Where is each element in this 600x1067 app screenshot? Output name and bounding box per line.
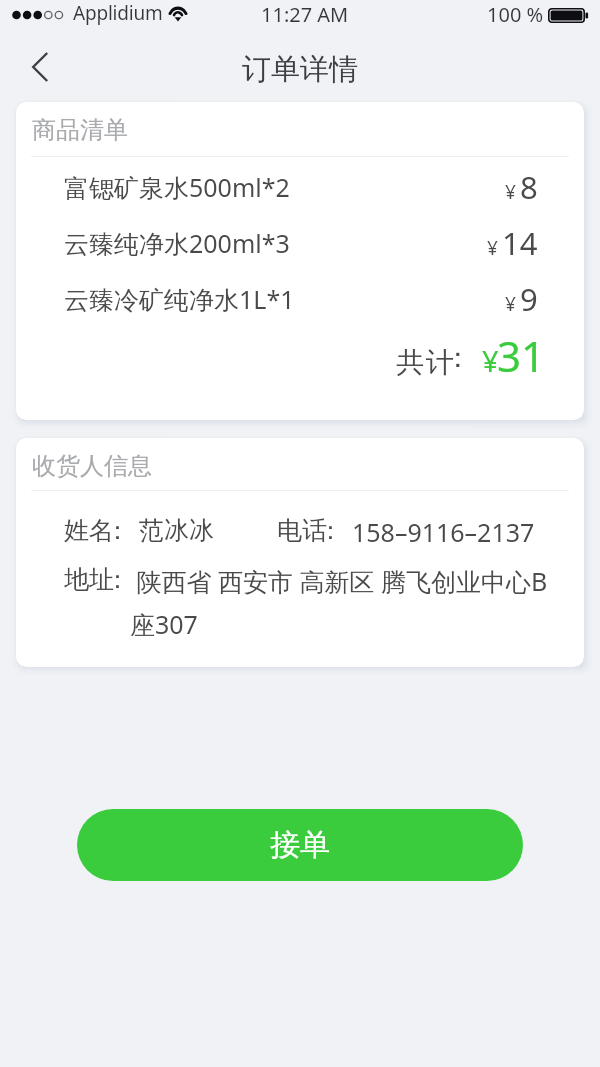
staticText: 接单: [270, 826, 330, 864]
staticText: Applidium: [73, 0, 163, 26]
staticText: 14: [502, 222, 538, 264]
staticText: 31: [497, 327, 546, 384]
staticText: ：: [318, 515, 343, 546]
staticText: ：: [105, 564, 130, 595]
staticText: ：: [105, 515, 130, 546]
button[interactable]: 富锶矿泉水500ml*2: [16, 159, 584, 215]
staticText: ¥: [505, 291, 516, 317]
staticText: ¥: [505, 179, 516, 205]
staticText: 云臻纯净水200ml*3: [64, 226, 290, 260]
staticText: ：: [444, 340, 471, 375]
staticText: 姓名: [64, 515, 114, 546]
button[interactable]: 云臻纯净水200ml*3: [16, 215, 584, 271]
staticText: 订单详情: [242, 51, 358, 88]
other: Battery full: [548, 8, 588, 23]
staticText: 电话: [277, 515, 327, 546]
staticText: 8: [520, 166, 538, 208]
staticText: 云臻冷矿纯净水1L*1: [64, 282, 295, 316]
button[interactable]: 云臻冷矿纯净水1L*1: [16, 271, 584, 327]
staticText: ¥: [482, 341, 499, 380]
button[interactable]: 接单: [77, 809, 523, 881]
staticText: 陕西省 西安市 高新区 腾飞创业中心B座307: [130, 564, 551, 641]
other: Wi-Fi: [166, 2, 192, 24]
staticText: 158–9116–2137: [352, 515, 535, 549]
staticText: 9: [520, 278, 538, 320]
staticText: 共计: [395, 345, 455, 380]
staticText: 范冰冰: [139, 515, 214, 546]
staticText: 11:27 AM: [261, 1, 349, 28]
button[interactable]: Back: [0, 34, 66, 100]
staticText: 100 %: [487, 1, 544, 28]
staticText: 富锶矿泉水500ml*2: [64, 170, 290, 204]
staticText: 收货人信息: [32, 451, 152, 481]
staticText: ¥: [487, 235, 498, 261]
staticText: 商品清单: [32, 115, 128, 145]
staticText: 地址: [64, 564, 114, 595]
